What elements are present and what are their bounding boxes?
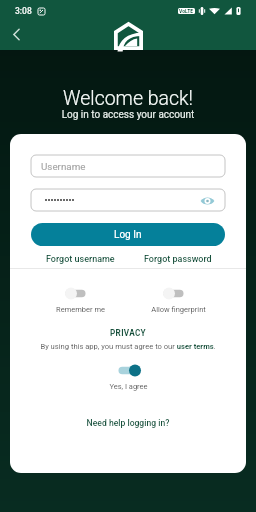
staticText: Yes, I agree (109, 382, 148, 391)
button[interactable]: Username (31, 155, 225, 177)
button[interactable]: Log In (31, 223, 225, 246)
staticText: Welcome back! (0, 87, 256, 110)
button[interactable]: Forgot password (144, 254, 212, 265)
button[interactable]: Remember me (50, 287, 110, 314)
button[interactable]: Show password (199, 192, 216, 209)
button[interactable]: Need help logging in? (10, 418, 246, 428)
staticText: Log in to access your account (0, 109, 256, 121)
staticText: By using this app, you must agree to our… (10, 342, 246, 351)
staticText: Username (41, 161, 86, 172)
staticText: PRIVACY (10, 328, 246, 338)
staticText: Remember me (56, 305, 105, 314)
staticText: VoLTE (179, 8, 194, 14)
staticText: Allow fingerprint (151, 305, 206, 314)
button[interactable]: Show password (31, 189, 225, 211)
staticText: 3:08 (15, 6, 32, 16)
staticText: Forgot password (144, 254, 212, 265)
button[interactable]: Back (4, 22, 28, 46)
staticText: Need help logging in? (10, 418, 246, 428)
staticText: Forgot username (46, 254, 115, 265)
button[interactable]: Forgot username (46, 254, 115, 265)
staticText: Log In (114, 229, 142, 241)
button[interactable]: Yes, I agree (98, 364, 158, 391)
button[interactable]: Allow fingerprint (142, 287, 214, 314)
